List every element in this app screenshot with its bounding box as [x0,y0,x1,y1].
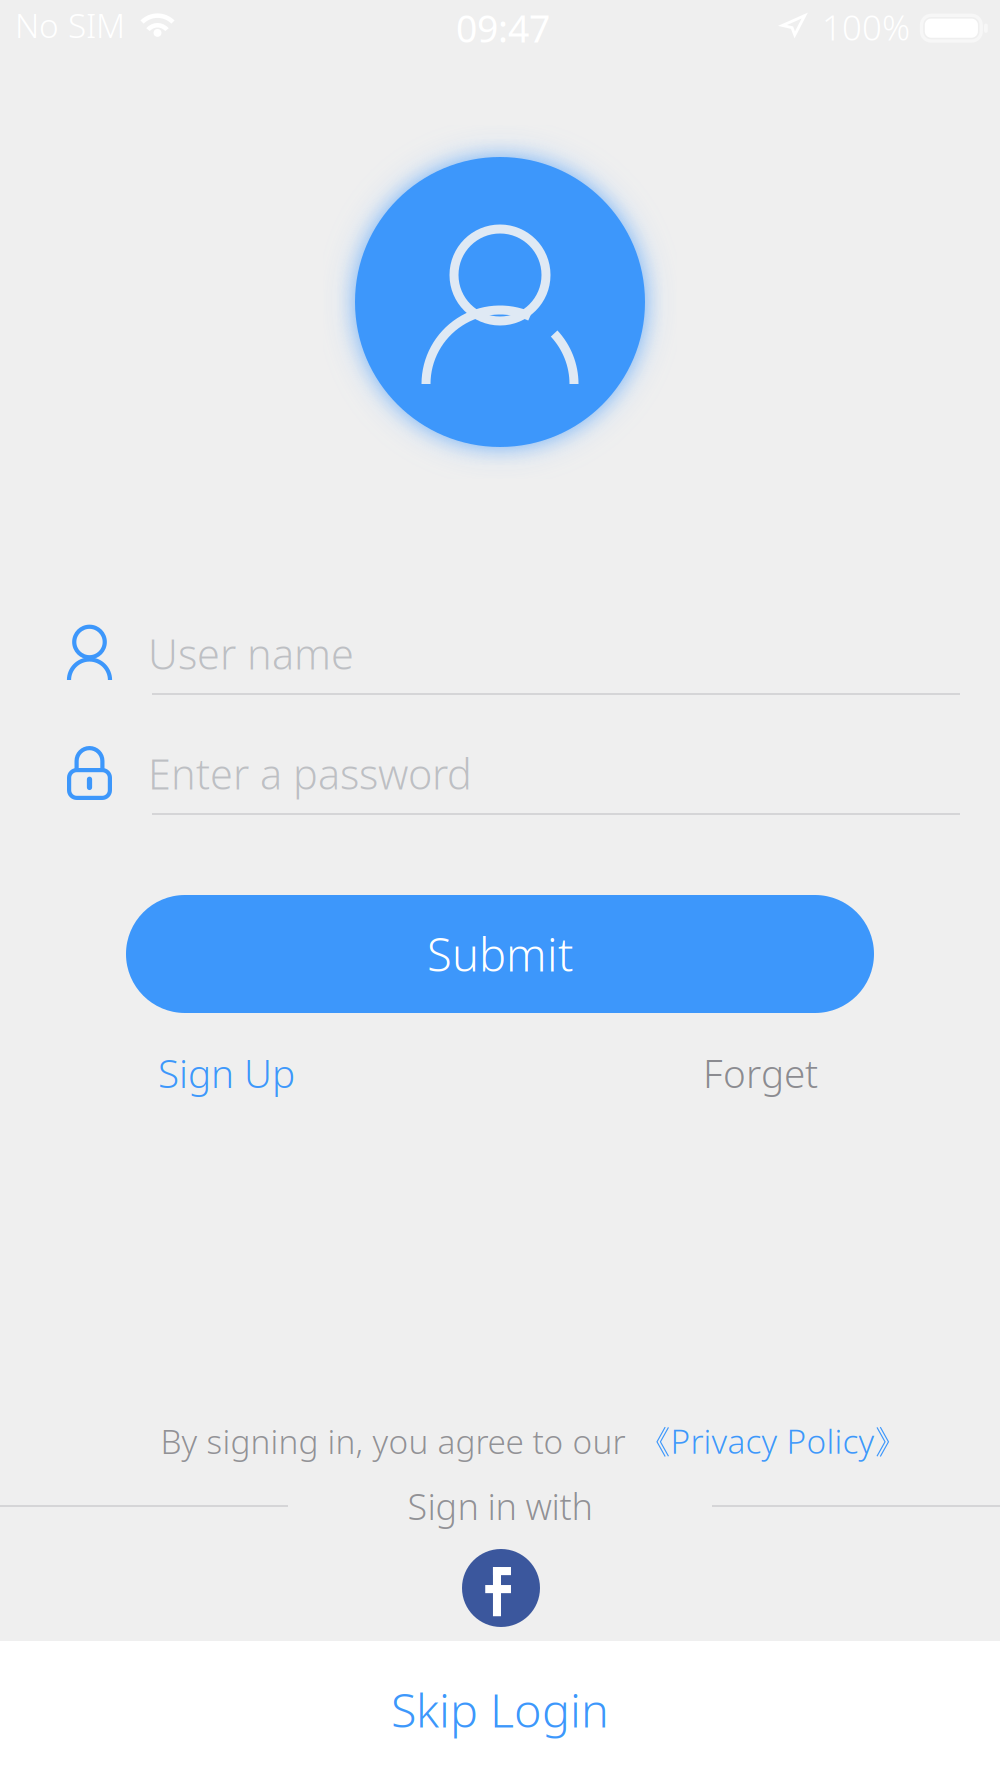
button[interactable]: Sign Up [158,1042,418,1104]
button[interactable]: 《Privacy Policy》 [637,1419,907,1463]
staticText: Sign Up [158,1047,295,1099]
staticText: 《Privacy Policy》 [637,1419,907,1463]
staticText: Skip Login [391,1678,609,1740]
staticText: Sign in with [407,1482,592,1530]
staticText: User name [148,626,354,681]
button[interactable]: Forget [558,1042,818,1104]
staticText: Forget [703,1047,818,1099]
button[interactable]: Submit [126,895,874,1013]
staticText: Submit [427,924,573,984]
staticText: 100% [822,4,910,50]
staticText: No SIM [15,3,125,47]
button[interactable]: Skip Login [0,1641,1000,1778]
staticText: By signing in, you agree to our [160,1419,625,1463]
button[interactable]: Sign in with Facebook [462,1549,540,1627]
staticText: 09:47 [456,3,550,53]
staticText: Enter a password [148,746,472,801]
